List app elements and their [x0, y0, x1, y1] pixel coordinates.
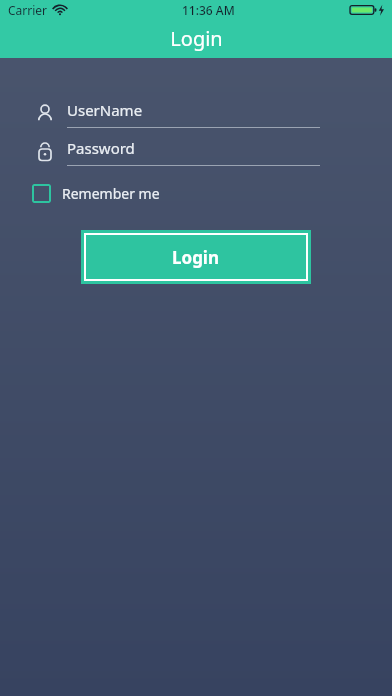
other: Wi-Fi	[53, 3, 67, 17]
staticText: UserName	[67, 100, 143, 120]
staticText: Remember me	[62, 184, 160, 203]
staticText: Carrier	[8, 2, 48, 18]
button[interactable]: Login	[84, 233, 308, 281]
button[interactable]: Password	[32, 138, 320, 166]
staticText: Login	[172, 246, 220, 269]
button[interactable]: Remember me	[32, 180, 170, 207]
staticText: 11:36 AM	[182, 2, 235, 18]
staticText: Login	[170, 25, 223, 52]
button[interactable]: UserName	[32, 100, 320, 128]
staticText: Password	[67, 138, 135, 158]
other: Battery charging	[350, 3, 384, 17]
